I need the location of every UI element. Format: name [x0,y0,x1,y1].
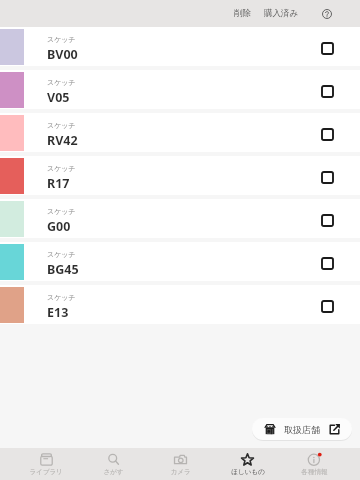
button[interactable]: Select BG45 [313,249,341,277]
staticText: RV42 [47,132,78,149]
button[interactable]: ほしいもの [214,448,281,480]
staticText: スケッチ [47,164,76,173]
button[interactable]: 各種情報 [281,448,348,480]
button[interactable]: スケッチ [0,27,360,66]
staticText: スケッチ [47,293,76,302]
button[interactable]: スケッチ [0,70,360,109]
staticText: 各種情報 [301,468,328,476]
staticText: E13 [47,304,69,321]
staticText: BG45 [47,261,79,278]
button[interactable]: Select V05 [313,77,341,105]
staticText: カメラ [170,468,191,476]
button[interactable]: カメラ [147,448,214,480]
staticText: スケッチ [47,207,76,216]
staticText: スケッチ [47,121,76,130]
staticText: G00 [47,218,71,235]
button[interactable]: 購入済み [259,4,304,23]
button[interactable]: スケッチ [0,156,360,195]
staticText: スケッチ [47,35,76,44]
staticText: スケッチ [47,78,76,87]
button[interactable]: Select G00 [313,206,341,234]
staticText: スケッチ [47,250,76,259]
staticText: 購入済み [264,8,299,19]
button[interactable]: Select RV42 [313,120,341,148]
button[interactable]: スケッチ [0,285,360,324]
button[interactable]: スケッチ [0,113,360,152]
staticText: 削除 [234,8,251,19]
staticText: ライブラリ [29,468,63,476]
button[interactable]: Help [316,3,338,25]
button[interactable]: Select R17 [313,163,341,191]
staticText: V05 [47,89,70,106]
button[interactable]: Select E13 [313,292,341,320]
button[interactable]: 削除 [229,4,256,23]
button[interactable]: Select BV00 [313,34,341,62]
button[interactable]: ライブラリ [12,448,80,480]
staticText: ほしいもの [231,468,265,476]
button[interactable]: スケッチ [0,199,360,238]
staticText: BV00 [47,46,78,63]
button[interactable]: スケッチ [0,242,360,281]
staticText: さがす [103,468,124,476]
button[interactable]: さがす [80,448,147,480]
staticText: 取扱店舗 [284,424,320,435]
staticText: R17 [47,175,70,192]
button[interactable]: 取扱店舗 [252,418,352,440]
